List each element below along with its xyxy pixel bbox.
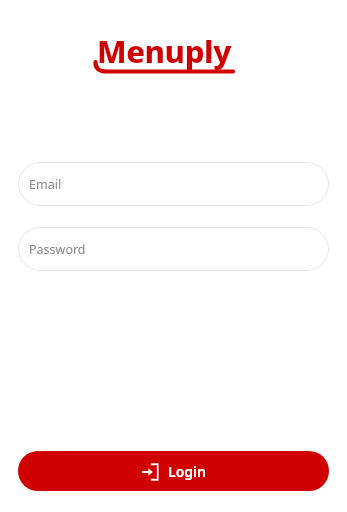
button[interactable]: Email — [18, 162, 329, 206]
button[interactable]: Login — [18, 451, 329, 491]
staticText: Password — [29, 241, 86, 258]
staticText: Email — [29, 176, 62, 193]
other: Login — [141, 463, 159, 481]
button[interactable]: Password — [18, 227, 329, 271]
staticText: Menuply — [97, 30, 232, 72]
staticText: Login — [168, 462, 206, 481]
